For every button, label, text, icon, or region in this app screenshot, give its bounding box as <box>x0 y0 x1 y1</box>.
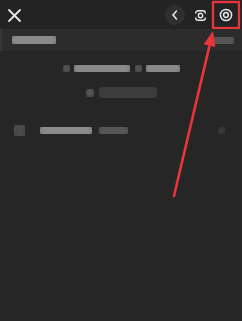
button[interactable]: Settings <box>213 2 239 28</box>
button[interactable] <box>0 29 242 51</box>
button[interactable] <box>0 118 242 142</box>
button[interactable]: Screenshot <box>188 3 212 27</box>
button[interactable]: Close <box>3 4 25 26</box>
button[interactable]: Back <box>165 5 185 25</box>
